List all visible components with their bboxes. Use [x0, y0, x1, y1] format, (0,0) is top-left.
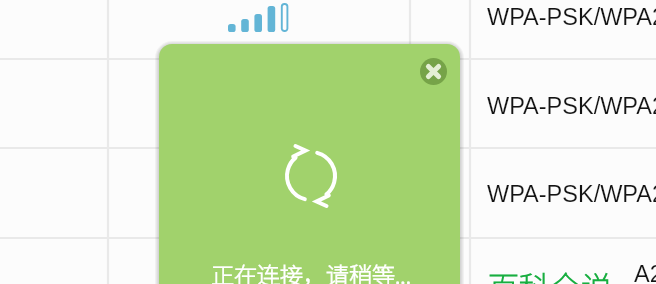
staticText: A2	[634, 261, 656, 284]
staticText: WPA-PSK/WPA2	[487, 4, 656, 30]
staticText: WPA-PSK/WPA2	[487, 93, 656, 119]
staticText: 百科全说	[488, 263, 612, 284]
staticText: 正在连接，请稍等...	[211, 257, 411, 284]
button[interactable]: Close	[420, 58, 447, 85]
staticText: WPA-PSK/WPA2	[487, 181, 656, 207]
